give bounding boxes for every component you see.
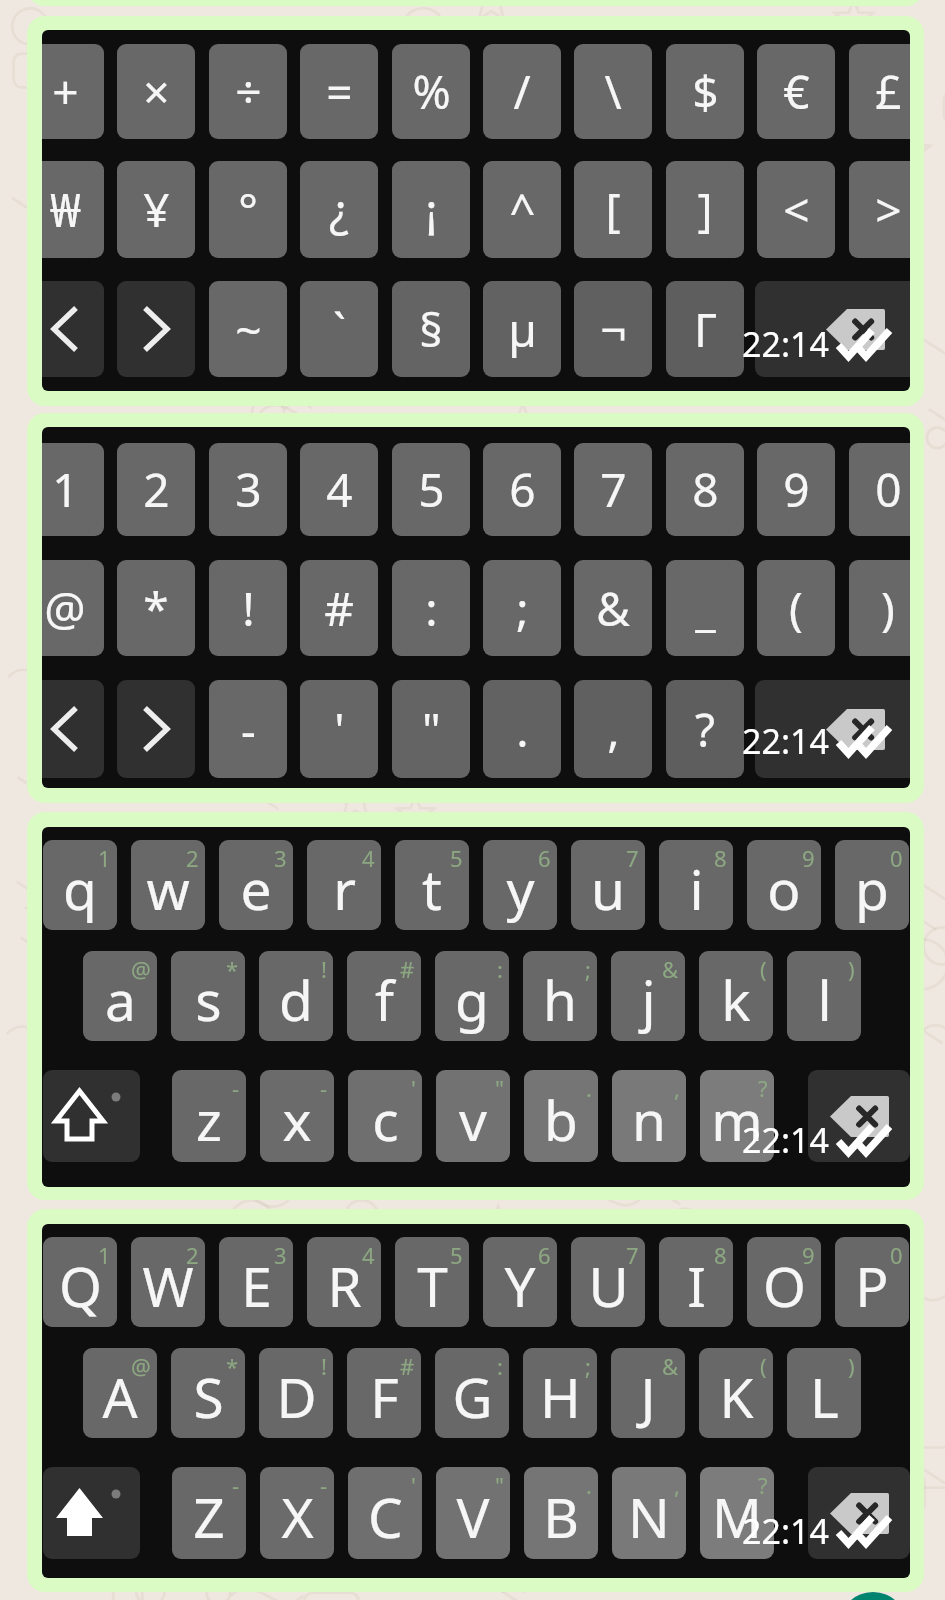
button[interactable]: 4 [307, 840, 381, 930]
button[interactable]: < [757, 161, 835, 258]
button[interactable] [27, 812, 924, 1200]
button[interactable]: ÷ [209, 44, 287, 139]
button[interactable]: # [347, 951, 421, 1041]
button[interactable]: 8 [659, 1237, 733, 1327]
button[interactable]: / [483, 44, 561, 139]
button[interactable]: 1 [42, 443, 104, 536]
button[interactable]: 9 [747, 1237, 821, 1327]
button[interactable]: ~ [209, 281, 287, 377]
button[interactable]: . [524, 1070, 598, 1162]
button[interactable] [27, 16, 924, 406]
button[interactable]: > [849, 161, 910, 258]
button[interactable]: ' [348, 1070, 422, 1162]
button[interactable]: ¥ [117, 161, 195, 258]
button[interactable]: \ [574, 44, 652, 139]
button[interactable]: 3 [209, 443, 287, 536]
button[interactable] [808, 1467, 910, 1559]
button[interactable]: ° [209, 161, 287, 258]
button[interactable]: 2 [117, 443, 195, 536]
button[interactable]: % [392, 44, 470, 139]
button[interactable] [27, 413, 924, 803]
button[interactable] [42, 680, 104, 778]
button[interactable]: ? [666, 680, 744, 778]
button[interactable]: 7 [574, 443, 652, 536]
button[interactable] [755, 281, 910, 377]
button[interactable]: 1 [43, 1237, 117, 1327]
button[interactable] [43, 1070, 140, 1162]
button[interactable]: ) [849, 560, 910, 656]
button[interactable]: 8 [666, 443, 744, 536]
button[interactable]: ; [523, 1348, 597, 1438]
button[interactable]: 6 [483, 443, 561, 536]
button[interactable]: 5 [392, 443, 470, 536]
button[interactable]: # [347, 1348, 421, 1438]
button[interactable]: " [436, 1467, 510, 1559]
button[interactable] [43, 1467, 140, 1559]
button[interactable]: $ [666, 44, 744, 139]
button[interactable]: 2 [131, 840, 205, 930]
button[interactable]: 4 [307, 1237, 381, 1327]
button[interactable]: ? [700, 1070, 774, 1162]
button[interactable]: , [574, 680, 652, 778]
button[interactable]: 0 [835, 1237, 909, 1327]
button[interactable]: * [171, 951, 245, 1041]
button[interactable]: 3 [219, 840, 293, 930]
button[interactable]: 7 [571, 840, 645, 930]
button[interactable]: 7 [571, 1237, 645, 1327]
button[interactable]: ^ [483, 161, 561, 258]
button[interactable]: : [435, 1348, 509, 1438]
button[interactable] [808, 1070, 910, 1162]
button[interactable]: " [436, 1070, 510, 1162]
button[interactable]: , [612, 1070, 686, 1162]
button[interactable]: : [392, 560, 470, 656]
button[interactable]: 3 [219, 1237, 293, 1327]
button[interactable]: & [611, 1348, 685, 1438]
button[interactable]: ' [348, 1467, 422, 1559]
button[interactable]: 2 [131, 1237, 205, 1327]
button[interactable]: ! [259, 951, 333, 1041]
button[interactable]: = [300, 44, 378, 139]
button[interactable]: Scroll to bottom [839, 1592, 907, 1600]
button[interactable]: ' [300, 680, 378, 778]
button[interactable]: @ [42, 560, 104, 656]
button[interactable]: 4 [300, 443, 378, 536]
button[interactable]: * [171, 1348, 245, 1438]
button[interactable]: ) [787, 1348, 861, 1438]
button[interactable]: _ [666, 560, 744, 656]
button[interactable]: - [260, 1467, 334, 1559]
button[interactable]: 6 [483, 1237, 557, 1327]
button[interactable]: ¡ [392, 161, 470, 258]
button[interactable]: ( [757, 560, 835, 656]
button[interactable]: . [524, 1467, 598, 1559]
button[interactable]: 6 [483, 840, 557, 930]
button[interactable]: ? [700, 1467, 774, 1559]
button[interactable]: & [611, 951, 685, 1041]
button[interactable]: 5 [395, 840, 469, 930]
button[interactable]: ¿ [300, 161, 378, 258]
button[interactable] [117, 680, 195, 778]
button[interactable]: * [117, 560, 195, 656]
button[interactable]: : [435, 951, 509, 1041]
button[interactable]: µ [483, 281, 561, 377]
button[interactable]: § [392, 281, 470, 377]
button[interactable]: , [612, 1467, 686, 1559]
button[interactable]: 1 [43, 840, 117, 930]
button[interactable]: × [117, 44, 195, 139]
button[interactable]: 0 [835, 840, 909, 930]
button[interactable]: ! [259, 1348, 333, 1438]
button[interactable] [117, 281, 195, 377]
button[interactable]: ; [523, 951, 597, 1041]
button[interactable]: [ [574, 161, 652, 258]
button[interactable]: - [172, 1467, 246, 1559]
button[interactable]: - [209, 680, 287, 778]
button[interactable]: ₩ [42, 161, 104, 258]
button[interactable]: ) [787, 951, 861, 1041]
button[interactable]: 0 [849, 443, 910, 536]
button[interactable] [42, 281, 104, 377]
button[interactable]: ; [483, 560, 561, 656]
button[interactable]: ! [209, 560, 287, 656]
button[interactable]: € [757, 44, 835, 139]
button[interactable]: @ [83, 1348, 157, 1438]
button[interactable]: - [260, 1070, 334, 1162]
button[interactable]: 9 [757, 443, 835, 536]
